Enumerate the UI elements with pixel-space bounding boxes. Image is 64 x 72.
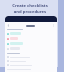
other: More options — [52, 24, 55, 27]
button[interactable] — [7, 37, 55, 40]
other: Back — [7, 24, 10, 27]
button[interactable] — [7, 42, 55, 45]
other: App status bar — [5, 16, 57, 22]
button[interactable]: Back — [7, 24, 55, 27]
button[interactable] — [7, 47, 55, 50]
button[interactable] — [7, 56, 55, 58]
button[interactable] — [7, 32, 55, 35]
staticText: Create checklists and procedures — [4, 3, 56, 14]
button[interactable]: Create checklists and procedures — [4, 3, 56, 14]
button[interactable] — [7, 60, 55, 62]
button[interactable] — [7, 64, 55, 66]
